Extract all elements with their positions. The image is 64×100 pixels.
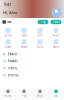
staticText: Ask [22, 34, 26, 37]
button[interactable]: Pay [37, 20, 48, 24]
staticText: Bank [21, 45, 27, 49]
button[interactable]: History [0, 65, 64, 72]
button[interactable]: Me [48, 90, 64, 97]
staticText: Rewards [7, 59, 17, 63]
staticText: History [7, 66, 16, 70]
staticText: Balance [7, 52, 17, 56]
staticText: Home [4, 94, 12, 97]
staticText: Scan [7, 20, 12, 24]
staticText: Shop [36, 94, 43, 97]
staticText: Pay [41, 20, 45, 24]
button[interactable]: Profile [52, 8, 61, 17]
staticText: Pay [22, 94, 26, 97]
button[interactable]: Send [0, 28, 16, 37]
button[interactable]: Shop [48, 28, 64, 37]
button[interactable]: Home [0, 90, 16, 97]
button[interactable]: Ask [16, 28, 32, 37]
staticText: Card [5, 45, 11, 49]
button[interactable]: Bank [16, 39, 32, 49]
button[interactable]: Card [0, 39, 16, 49]
staticText: Shop [52, 34, 59, 37]
staticText: Bill [37, 34, 42, 37]
button[interactable]: More [48, 39, 64, 49]
button[interactable]: Rewards [0, 58, 64, 65]
staticText: Gold [36, 45, 43, 49]
button[interactable]: Cards [50, 20, 61, 24]
staticText: Cards [52, 20, 59, 24]
staticText: 9:41 [4, 1, 11, 7]
staticText: Me [54, 94, 58, 97]
button[interactable]: Bill [32, 28, 48, 37]
staticText: Settings [7, 73, 18, 77]
button[interactable]: Shop [32, 90, 48, 97]
staticText: More [52, 45, 59, 49]
button[interactable]: Gold [32, 39, 48, 49]
button[interactable]: Pay [16, 90, 32, 97]
staticText: Hi, Alex [3, 10, 17, 15]
button[interactable]: Scan [2, 20, 12, 24]
staticText: Send [4, 34, 11, 37]
button[interactable]: Settings [0, 72, 64, 79]
button[interactable]: Balance [0, 51, 64, 58]
